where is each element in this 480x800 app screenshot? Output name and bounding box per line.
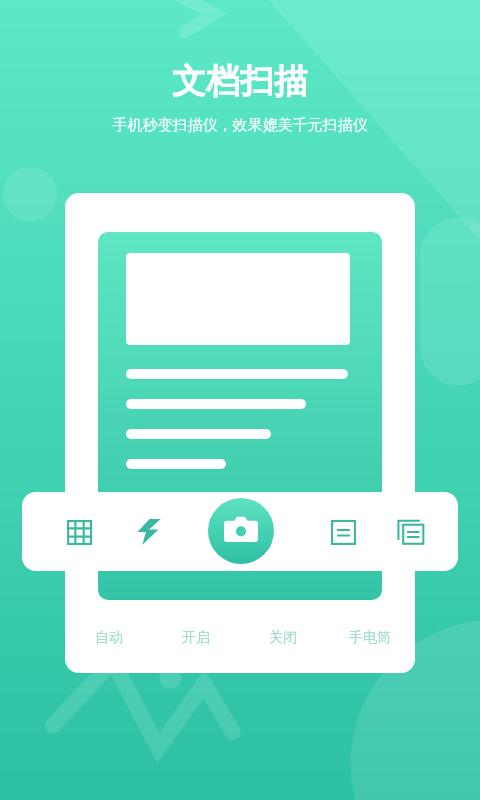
- button[interactable]: Single page: [322, 511, 364, 553]
- staticText: 文档扫描: [0, 60, 480, 800]
- button[interactable]: 关闭: [239, 622, 326, 654]
- button[interactable]: Flash: [128, 511, 170, 553]
- button[interactable]: Multi page: [390, 511, 432, 553]
- button[interactable]: Capture: [208, 498, 274, 564]
- button[interactable]: 开启: [152, 622, 239, 654]
- staticText: 开启: [182, 629, 210, 647]
- staticText: 自动: [95, 629, 123, 647]
- staticText: 关闭: [269, 629, 297, 647]
- button[interactable]: 手电筒: [326, 622, 413, 654]
- staticText: 手机秒变扫描仪，效果媲美千元扫描仪: [0, 116, 480, 800]
- button[interactable]: Grid: [58, 511, 100, 553]
- button[interactable]: 自动: [65, 622, 152, 654]
- staticText: 手电筒: [349, 629, 391, 647]
